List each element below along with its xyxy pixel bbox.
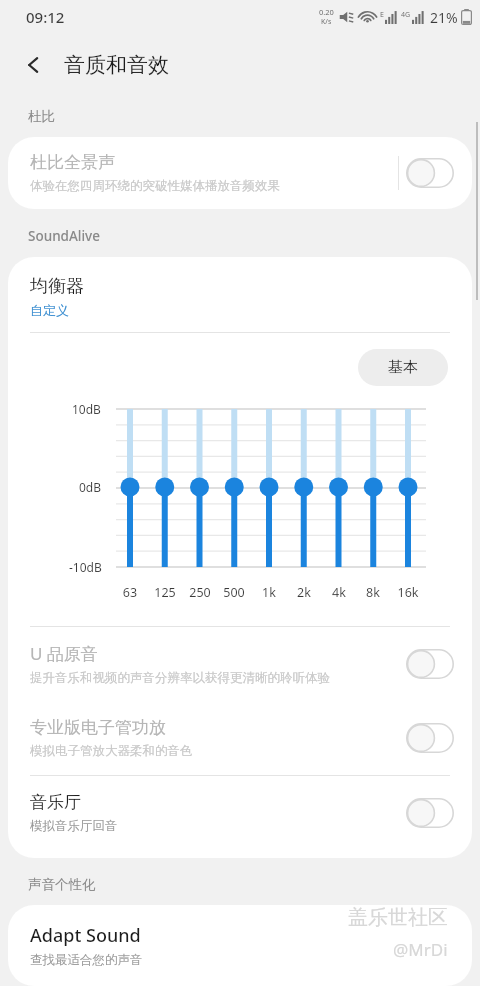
staticText: 09:12 (26, 7, 65, 27)
staticText: K/s (321, 17, 332, 27)
staticText: 盖乐世社区 (348, 905, 448, 930)
staticText: 自定义 (30, 302, 69, 318)
button[interactable]: 均衡器 (8, 257, 472, 332)
staticText: @MrDi (393, 938, 448, 961)
staticText: Adapt Sound (30, 923, 141, 948)
staticText: 21% (430, 8, 458, 27)
staticText: 0.20 (319, 7, 334, 17)
staticText: 声音个性化 (28, 876, 96, 893)
staticText: 查找最适合您的声音 (30, 952, 143, 968)
button[interactable]: 专业版电子管功放 开关 (406, 723, 454, 753)
button[interactable]: 基本 (358, 349, 448, 386)
staticText: 4G (401, 10, 411, 20)
staticText: 2k (284, 584, 324, 601)
staticText: 16k (388, 584, 428, 601)
staticText: E (380, 10, 384, 20)
staticText: 基本 (388, 358, 418, 377)
staticText: 体验在您四周环绕的突破性媒体播放音频效果 (30, 178, 280, 194)
button[interactable]: 专业版电子管功放 (8, 701, 472, 775)
button[interactable]: 杜比全景声 开关 (406, 158, 454, 188)
button[interactable]: 返回 (8, 39, 60, 91)
staticText: SoundAlive (28, 227, 100, 245)
button[interactable]: U 品原音 开关 (406, 649, 454, 679)
staticText: 提升音乐和视频的声音分辨率以获得更清晰的聆听体验 (30, 670, 330, 686)
button[interactable]: Adapt Sound (8, 905, 472, 986)
staticText: 250 (180, 584, 220, 601)
staticText: 125 (145, 584, 185, 601)
staticText: 8k (353, 584, 393, 601)
staticText: 10dB (72, 401, 101, 417)
staticText: U 品原音 (30, 642, 98, 665)
staticText: 1k (249, 584, 289, 601)
staticText: 500 (214, 584, 254, 601)
staticText: 音质和音效 (64, 52, 169, 78)
button[interactable]: 音乐厅 开关 (406, 798, 454, 828)
staticText: 杜比 (28, 108, 55, 125)
button[interactable]: 音乐厅 (8, 776, 472, 850)
staticText: 63 (110, 584, 150, 601)
staticText: 均衡器 (30, 275, 84, 298)
staticText: -10dB (69, 559, 102, 575)
staticText: 4k (319, 584, 359, 601)
button[interactable]: U 品原音 (8, 627, 472, 701)
staticText: 模拟电子管放大器柔和的音色 (30, 743, 193, 759)
staticText: 专业版电子管功放 (30, 717, 166, 738)
staticText: 音乐厅 (30, 792, 81, 813)
staticText: 杜比全景声 (30, 152, 115, 173)
staticText: 0dB (79, 479, 102, 495)
staticText: 模拟音乐厅回音 (30, 818, 118, 834)
button[interactable]: 杜比全景声 (8, 137, 472, 209)
